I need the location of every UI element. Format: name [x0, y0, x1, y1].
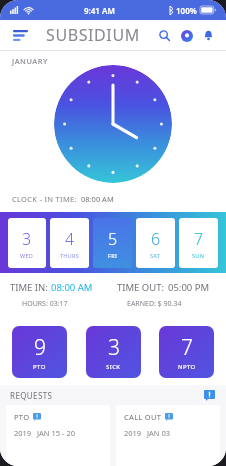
- staticText: FRI: [108, 252, 118, 259]
- button[interactable]: CALL OUT: [116, 405, 220, 466]
- button[interactable]: 7: [159, 326, 214, 378]
- staticText: 6: [151, 228, 161, 250]
- staticText: 3: [22, 228, 32, 250]
- staticText: 08:00 AM: [81, 194, 114, 204]
- button[interactable]: 9: [12, 326, 67, 378]
- button[interactable]: 3: [8, 218, 46, 268]
- button[interactable]: 7: [179, 218, 218, 268]
- staticText: 100%: [176, 5, 197, 16]
- staticText: THURS: [60, 252, 80, 259]
- staticText: 9:41 AM: [84, 5, 115, 16]
- staticText: REQUESTS: [10, 390, 53, 401]
- staticText: JAN 15 - 20: [37, 428, 75, 438]
- staticText: 5: [108, 228, 118, 250]
- staticText: PTO: [14, 412, 30, 422]
- staticText: SAT: [150, 252, 161, 259]
- staticText: EARNED: $ 90.34: [127, 299, 182, 309]
- staticText: CLOCK - IN TIME:: [12, 194, 77, 204]
- staticText: PTO: [33, 363, 46, 371]
- staticText: 2019: [124, 428, 142, 438]
- button[interactable]: 6: [136, 218, 175, 268]
- button[interactable]: 3: [86, 326, 141, 378]
- staticText: 7: [194, 228, 204, 250]
- staticText: JAN 03: [147, 428, 171, 438]
- button[interactable]: TIME IN:: [0, 273, 113, 319]
- button[interactable]: Request alerts: [203, 389, 216, 402]
- staticText: TIME OUT:: [117, 281, 165, 294]
- button[interactable]: Search: [155, 26, 174, 45]
- staticText: 9: [34, 333, 46, 362]
- button[interactable]: Menu: [8, 23, 32, 47]
- button[interactable]: Notifications: [199, 26, 218, 45]
- button[interactable]: TIME OUT:: [113, 273, 226, 319]
- staticText: WED: [20, 252, 34, 259]
- staticText: 05:00 PM: [168, 281, 210, 294]
- button[interactable]: Messages: [177, 26, 196, 45]
- staticText: JANUARY: [12, 56, 48, 66]
- staticText: SICK: [106, 363, 121, 371]
- staticText: 08:00 AM: [51, 281, 93, 294]
- button[interactable]: Clock: [54, 65, 172, 183]
- staticText: TIME IN:: [10, 281, 48, 294]
- staticText: 7: [181, 333, 193, 362]
- staticText: 2019: [14, 428, 32, 438]
- staticText: SUN: [192, 252, 205, 259]
- staticText: NPTO: [178, 363, 196, 371]
- staticText: 3: [108, 333, 120, 362]
- staticText: 4: [65, 228, 75, 250]
- button[interactable]: PTO: [6, 405, 110, 466]
- staticText: CALL OUT: [124, 412, 162, 422]
- staticText: SUBSIDIUM: [46, 24, 140, 46]
- staticText: HOURS: 03:17: [22, 299, 68, 309]
- button[interactable]: 5: [93, 218, 132, 268]
- button[interactable]: 4: [50, 218, 89, 268]
